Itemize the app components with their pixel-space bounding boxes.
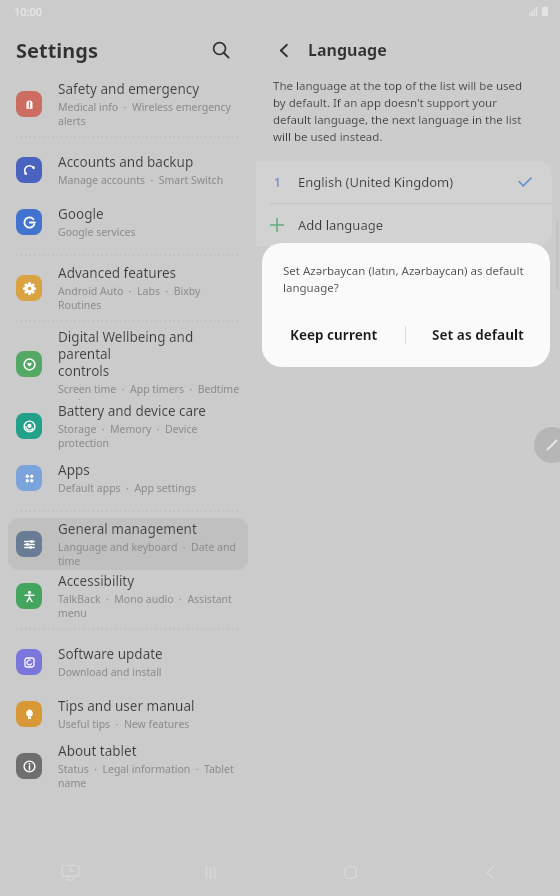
staticText: English (United Kingdom) <box>298 173 516 191</box>
button[interactable]: Add language <box>256 204 552 246</box>
staticText: Settings <box>16 37 98 64</box>
staticText: Download and install <box>58 665 162 679</box>
button[interactable]: Digital Wellbeing and parental controls <box>8 328 248 400</box>
staticText: Set Azərbaycan (latın, Azərbaycan) as de… <box>283 263 529 295</box>
button[interactable]: Google <box>8 196 248 248</box>
staticText: Manage accounts · Smart Switch <box>58 173 224 187</box>
staticText: Accessibility <box>58 572 135 590</box>
button[interactable]: Search <box>206 35 236 65</box>
staticText: Screen time · App timers · Bedtime mode <box>58 382 240 400</box>
button[interactable]: 1 <box>256 161 552 203</box>
staticText: General management <box>58 520 197 538</box>
staticText: Battery and device care <box>58 402 206 420</box>
staticText: Advanced features <box>58 264 177 282</box>
button[interactable]: Back <box>268 34 300 66</box>
staticText: 10:00 <box>14 4 43 19</box>
staticText: Software update <box>58 645 163 663</box>
button[interactable]: Safety and emergency <box>8 78 248 130</box>
button[interactable]: Accounts and backup <box>8 144 248 196</box>
staticText: Google <box>58 205 104 223</box>
button[interactable]: Apps <box>8 452 248 504</box>
staticText: Accounts and backup <box>58 153 194 171</box>
button[interactable]: Set as default <box>406 313 550 357</box>
staticText: Keep current <box>290 326 378 344</box>
staticText: About tablet <box>58 742 137 760</box>
staticText: Useful tips · New features <box>58 717 190 731</box>
staticText: Medical info · Wireless emergency alerts <box>58 100 240 128</box>
staticText: Apps <box>58 461 90 479</box>
staticText: Language <box>308 39 387 61</box>
staticText: Tips and user manual <box>58 697 195 715</box>
staticText: Safety and emergency <box>58 80 200 98</box>
staticText: Add language <box>298 216 384 234</box>
staticText: TalkBack · Mono audio · Assistant menu <box>58 592 240 620</box>
staticText: The language at the top of the list will… <box>273 78 536 145</box>
button[interactable]: Edit <box>534 427 560 463</box>
button[interactable]: Advanced features <box>8 262 248 314</box>
staticText: Android Auto · Labs · Bixby Routines <box>58 284 240 312</box>
staticText: Language and keyboard · Date and time <box>58 540 240 568</box>
staticText: Storage · Memory · Device protection <box>58 422 240 450</box>
staticText: Default apps · App settings <box>58 481 196 495</box>
button[interactable]: Keep current <box>262 313 405 357</box>
staticText: Status · Legal information · Tablet name <box>58 762 240 790</box>
button[interactable]: About tablet <box>8 740 248 792</box>
staticText: Google services <box>58 225 136 239</box>
staticText: Set as default <box>432 326 524 344</box>
button[interactable]: Accessibility <box>8 570 248 622</box>
button[interactable]: Battery and device care <box>8 400 248 452</box>
staticText: Digital Wellbeing and parental controls <box>58 328 240 380</box>
button[interactable]: Tips and user manual <box>8 688 248 740</box>
button[interactable]: General management <box>8 518 248 570</box>
staticText: 1 <box>274 174 281 190</box>
button[interactable]: Software update <box>8 636 248 688</box>
